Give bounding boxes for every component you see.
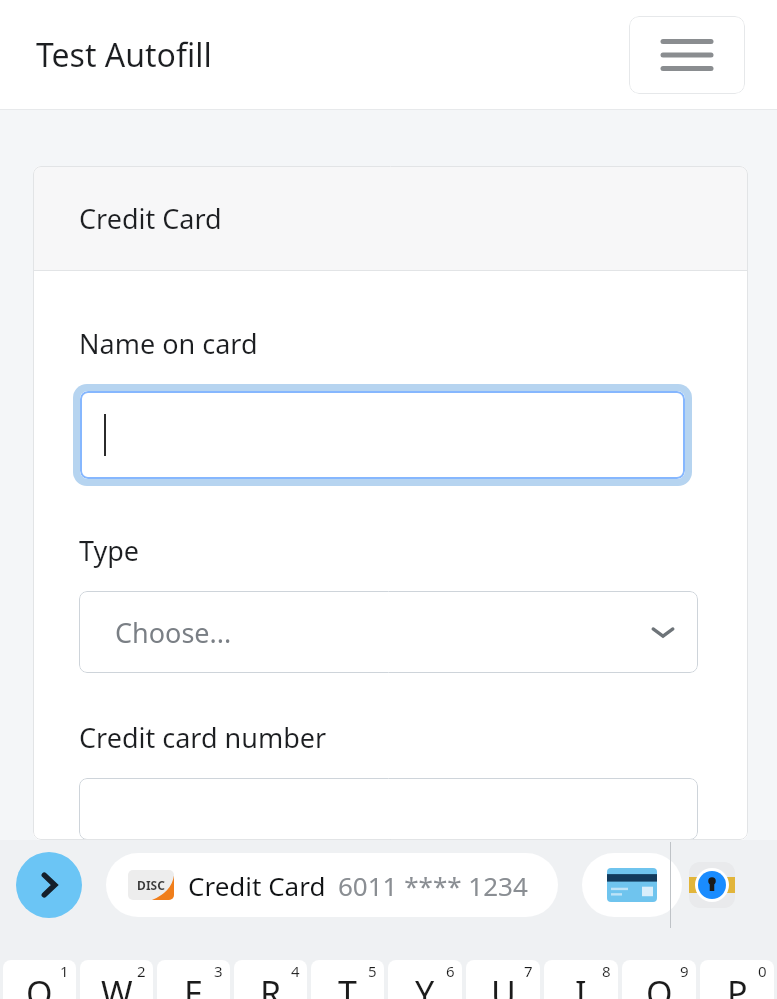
button[interactable]: 3: [157, 960, 230, 999]
staticText: DISC: [137, 877, 165, 893]
staticText: Credit Card: [188, 868, 326, 903]
staticText: W: [101, 970, 133, 999]
staticText: E: [184, 970, 203, 999]
staticText: 6: [446, 961, 455, 981]
button[interactable]: 4: [234, 960, 307, 999]
staticText: U: [491, 970, 516, 999]
staticText: 1: [60, 961, 69, 981]
button[interactable]: 9: [622, 960, 696, 999]
button[interactable]: 5: [311, 960, 384, 999]
staticText: I: [575, 970, 587, 999]
button[interactable]: 7: [466, 960, 540, 999]
staticText: R: [260, 970, 282, 999]
staticText: O: [646, 970, 673, 999]
button[interactable]: 6: [388, 960, 462, 999]
button[interactable]: Menu: [629, 16, 745, 94]
button[interactable]: Choose...: [79, 591, 698, 673]
staticText: Credit Card: [79, 200, 222, 237]
staticText: 5: [368, 961, 377, 981]
staticText: Choose...: [115, 614, 232, 651]
staticText: 6011 **** 1234: [338, 868, 528, 903]
button[interactable]: [79, 778, 698, 840]
button[interactable]: Credit card: [582, 853, 682, 917]
staticText: Test Autofill: [36, 33, 212, 77]
staticText: 9: [680, 961, 689, 981]
button[interactable]: 1Password: [686, 859, 738, 911]
staticText: 3: [214, 961, 223, 981]
button[interactable]: 0: [700, 960, 774, 999]
button[interactable]: [80, 391, 685, 479]
staticText: P: [727, 970, 748, 999]
staticText: Type: [79, 532, 140, 569]
staticText: 7: [524, 961, 533, 981]
staticText: Name on card: [79, 325, 258, 362]
button[interactable]: Next: [16, 852, 82, 918]
button[interactable]: DISC: [106, 853, 558, 917]
staticText: 4: [291, 961, 300, 981]
staticText: 8: [602, 961, 611, 981]
staticText: Credit card number: [79, 719, 327, 756]
staticText: Q: [26, 970, 53, 999]
staticText: T: [338, 970, 357, 999]
staticText: 2: [137, 961, 146, 981]
staticText: 0: [758, 961, 767, 981]
button[interactable]: 8: [544, 960, 618, 999]
staticText: Y: [415, 970, 435, 999]
button[interactable]: 1: [3, 960, 76, 999]
button[interactable]: 2: [80, 960, 153, 999]
